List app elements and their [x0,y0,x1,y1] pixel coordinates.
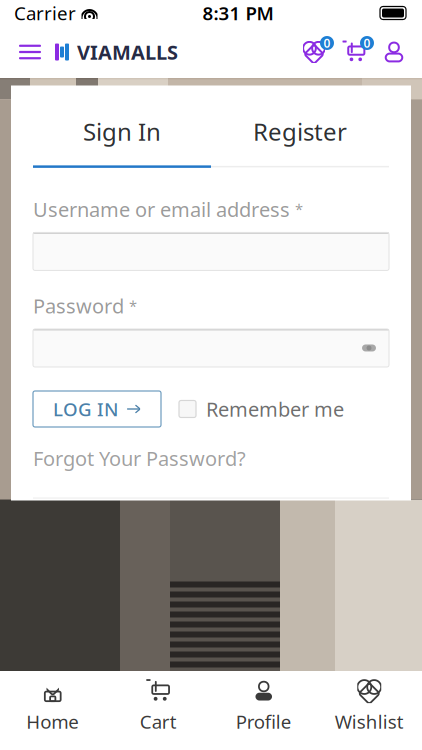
staticText: Home [26,709,79,734]
staticText: 0 [323,35,330,51]
staticText: Sign In [83,115,161,147]
button[interactable]: Wishlist [316,669,422,742]
button[interactable]: Register [211,105,389,157]
staticText: VIAMALLS [77,39,178,65]
button[interactable]: Wishlist, 0 items [294,30,334,74]
staticText: Forgot Your Password? [33,445,246,472]
button[interactable]: ViaMalls home [52,31,178,73]
button[interactable]: Cart [105,669,211,742]
button[interactable]: Account [374,30,414,74]
button[interactable]: Forgot Your Password? [33,441,246,476]
button[interactable]: Menu [8,30,52,74]
staticText: 8:31 PM [202,1,273,25]
button[interactable]: Sign In [33,105,211,157]
staticText: Password [33,292,124,319]
staticText: LOG IN [53,397,118,421]
staticText: Profile [236,709,292,734]
button[interactable]: LOG IN [33,391,161,427]
staticText: * [129,296,137,315]
staticText: Username or email address [33,196,290,222]
staticText: Wishlist [335,709,404,734]
button[interactable]: Cart, 0 items [334,30,374,74]
staticText: Carrier [14,1,76,25]
staticText: Remember me [206,396,344,422]
staticText: * [295,199,303,219]
button[interactable]: Remember me [179,396,344,422]
button[interactable]: Home [0,669,105,742]
staticText: Cart [140,709,177,734]
staticText: 0 [363,35,370,51]
button[interactable]: Profile [211,669,316,742]
staticText: Register [253,115,347,147]
